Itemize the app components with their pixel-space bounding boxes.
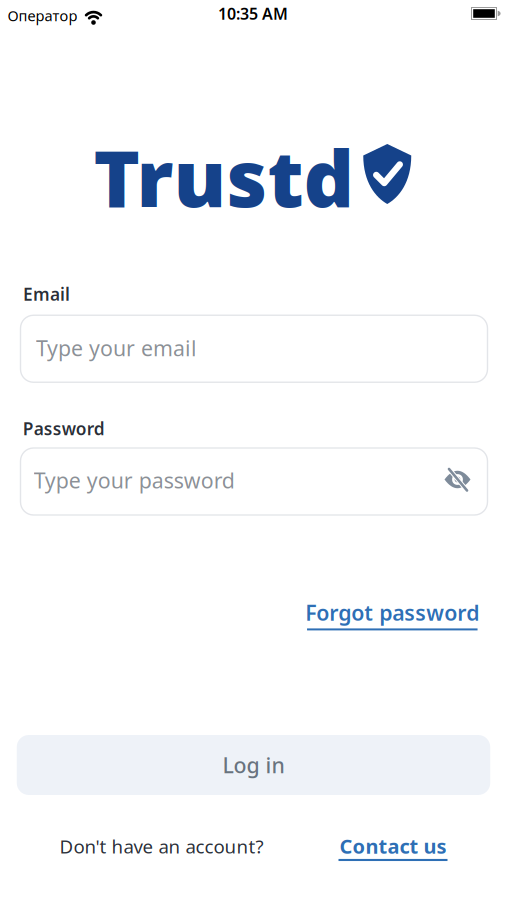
- staticText: Type your password: [34, 466, 235, 494]
- staticText: 10:35 AM: [218, 3, 288, 24]
- button[interactable]: Show password: [444, 468, 470, 490]
- button[interactable]: Email text field: [20, 315, 487, 382]
- button[interactable]: Forgot password: [305, 598, 479, 630]
- staticText: Forgot password: [305, 598, 479, 627]
- staticText: Don't have an account?: [59, 834, 263, 859]
- staticText: Оператор: [7, 6, 77, 25]
- staticText: Password: [23, 417, 105, 440]
- staticText: Contact us: [339, 833, 446, 859]
- staticText: Log in: [222, 751, 284, 779]
- staticText: Type your email: [36, 334, 197, 362]
- button[interactable]: Contact us: [338, 833, 447, 861]
- staticText: Email: [23, 282, 70, 305]
- button[interactable]: Log in: [17, 735, 490, 795]
- staticText: Trustd: [93, 124, 354, 229]
- button[interactable]: Password text field: [20, 448, 487, 515]
